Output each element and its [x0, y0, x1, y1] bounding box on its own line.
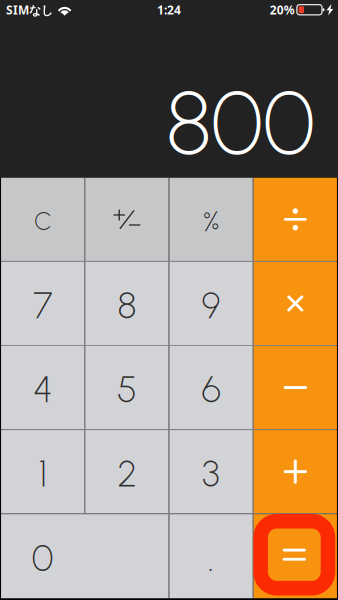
button[interactable]: 4 — [1, 346, 84, 429]
button[interactable]: 9 — [169, 262, 253, 345]
staticText: 6 — [202, 368, 221, 411]
button[interactable]: Plus Minus — [85, 178, 168, 261]
staticText: 800 — [166, 70, 315, 176]
staticText: 9 — [202, 283, 221, 327]
staticText: . — [208, 536, 214, 580]
button[interactable]: C — [1, 178, 84, 261]
button[interactable]: 8 — [85, 262, 168, 345]
button[interactable]: Divide — [254, 178, 337, 261]
staticText: 1 — [39, 452, 47, 495]
staticText: 1:24 — [157, 2, 181, 18]
button[interactable]: 2 — [85, 430, 168, 513]
staticText: 7 — [33, 283, 52, 327]
button[interactable]: 7 — [1, 262, 84, 345]
button[interactable]: 5 — [85, 346, 168, 429]
staticText: 4 — [33, 368, 52, 411]
button[interactable]: Equals — [254, 514, 337, 598]
button[interactable]: % — [169, 178, 253, 261]
staticText: 0 — [32, 536, 54, 580]
button[interactable]: 6 — [169, 346, 253, 429]
staticText: % — [203, 205, 219, 238]
staticText: 2 — [117, 452, 136, 495]
button[interactable]: 3 — [169, 430, 253, 513]
staticText: SIMなし — [6, 2, 53, 18]
button[interactable]: 1 — [1, 430, 84, 513]
staticText: 8 — [117, 283, 136, 327]
button[interactable]: Add — [254, 430, 337, 513]
staticText: 20% — [270, 2, 295, 18]
button[interactable]: . — [169, 514, 253, 598]
staticText: 3 — [202, 452, 220, 495]
button[interactable]: 0 — [1, 514, 168, 598]
staticText: 5 — [117, 368, 137, 411]
button[interactable]: Multiply — [254, 262, 337, 345]
button[interactable]: Subtract — [254, 346, 337, 429]
staticText: C — [34, 207, 51, 236]
